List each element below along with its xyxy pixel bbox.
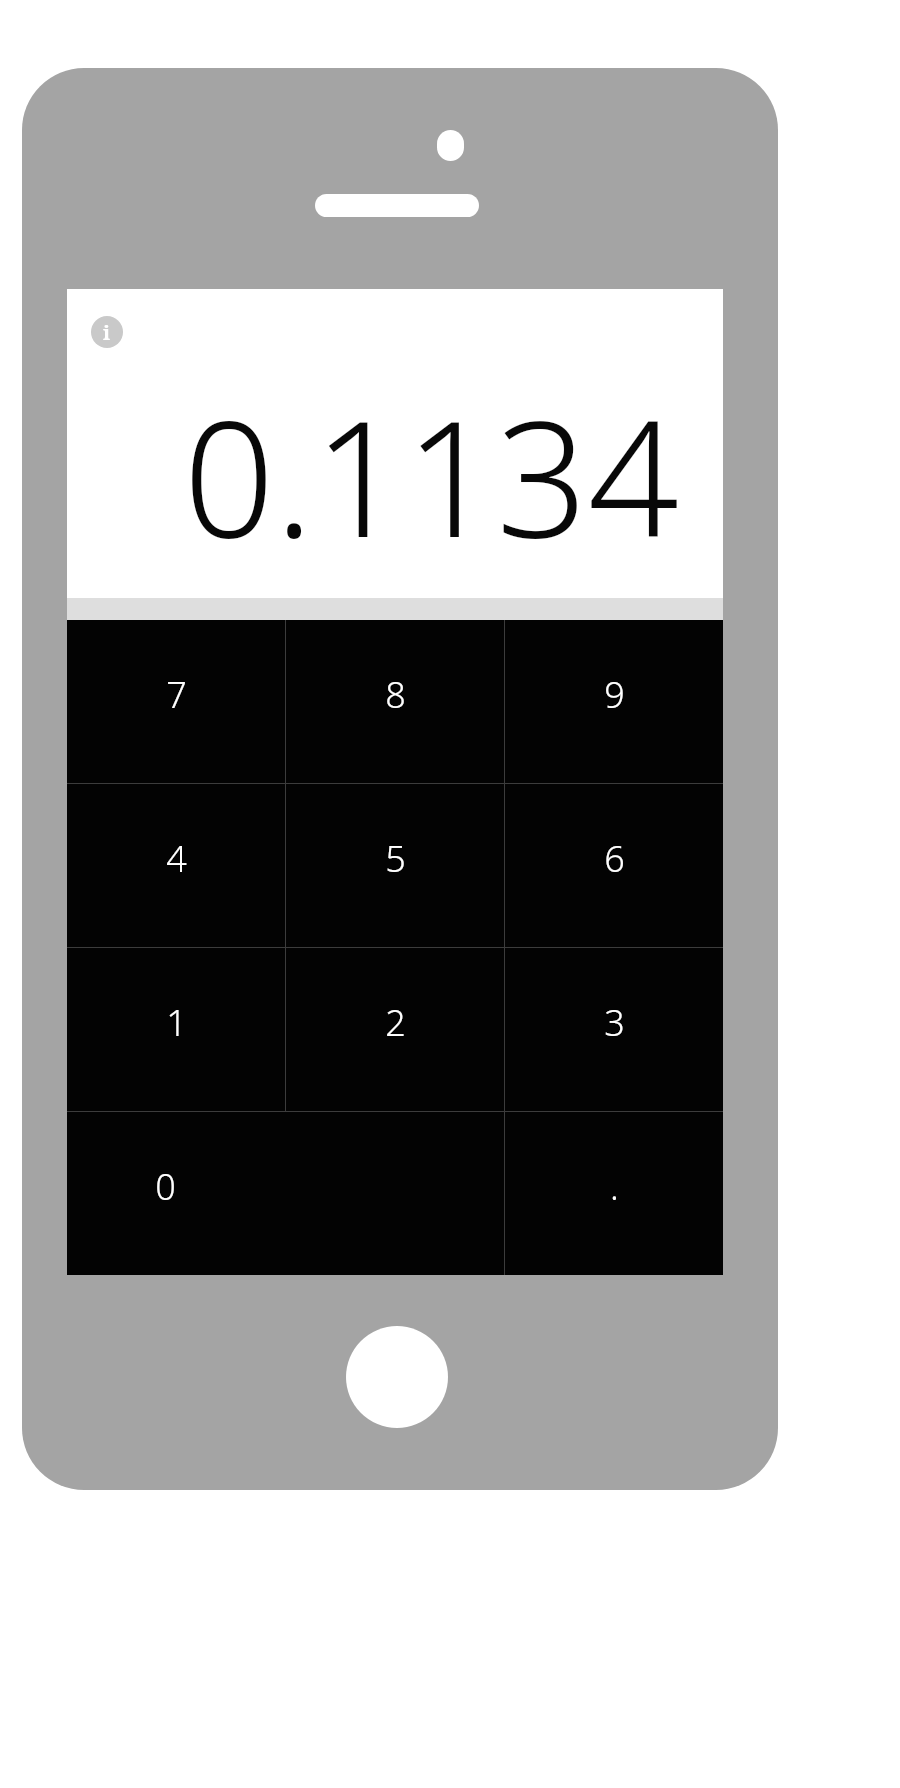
staticText: 6 (604, 834, 625, 883)
staticText: 7 (166, 670, 187, 719)
staticText: 8 (385, 670, 406, 719)
button[interactable]: Home (346, 1326, 448, 1428)
staticText: 4 (166, 834, 187, 883)
button[interactable]: 5 (286, 784, 504, 947)
staticText: 5 (385, 834, 406, 883)
staticText: 0 (155, 1162, 176, 1211)
staticText: 2 (385, 998, 406, 1047)
staticText: 9 (604, 670, 625, 719)
button[interactable]: 2 (286, 948, 504, 1111)
button[interactable]: 6 (505, 784, 723, 947)
button[interactable]: 9 (505, 620, 723, 783)
button[interactable]: Info (91, 316, 123, 348)
button[interactable]: 8 (286, 620, 504, 783)
button[interactable]: 4 (67, 784, 285, 947)
button[interactable]: 0 (67, 1112, 504, 1275)
staticText: . (610, 1162, 619, 1211)
button[interactable]: 3 (505, 948, 723, 1111)
button[interactable]: . (505, 1112, 723, 1275)
button[interactable]: 1 (67, 948, 285, 1111)
staticText: 3 (604, 998, 625, 1047)
staticText: i (103, 319, 111, 346)
staticText: 0.1134 (67, 366, 679, 584)
staticText: 1 (166, 998, 187, 1047)
button[interactable]: 7 (67, 620, 285, 783)
